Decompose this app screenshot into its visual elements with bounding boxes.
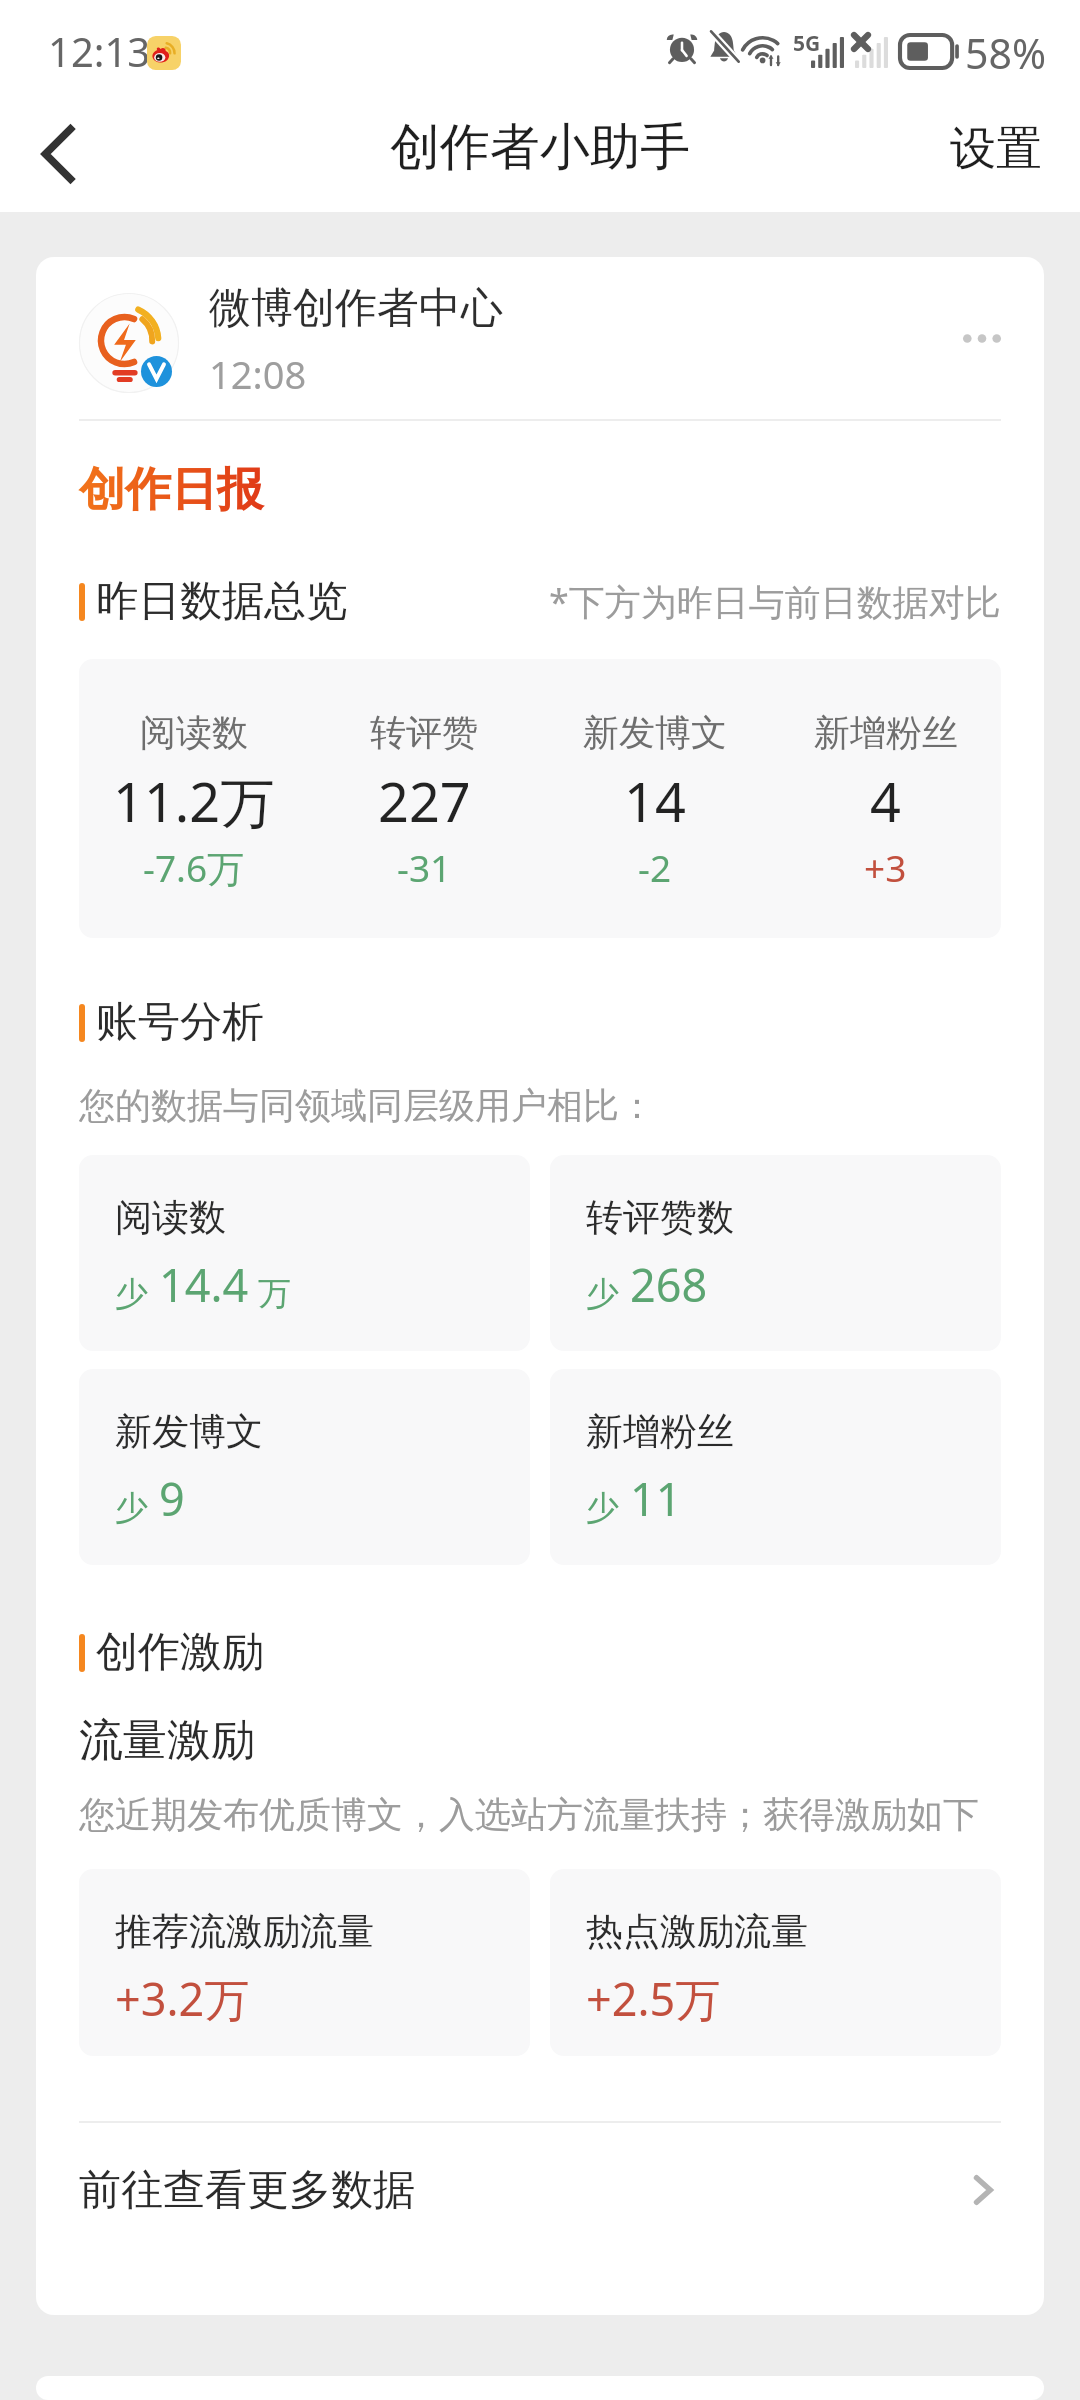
staticText: 14	[624, 764, 686, 838]
staticText: 4	[870, 764, 901, 838]
staticText: 创作日报	[79, 461, 263, 519]
staticText: 您近期发布优质博文，入选站方流量扶持；获得激励如下	[79, 1792, 979, 1837]
staticText: 阅读数	[140, 710, 248, 755]
staticText: 转评赞数	[586, 1194, 734, 1241]
staticText: 热点激励流量	[586, 1908, 808, 1955]
staticText: 阅读数	[115, 1194, 226, 1241]
button[interactable]: 阅读数	[79, 1155, 530, 1351]
staticText: +2.5万	[586, 1968, 721, 2029]
staticText: -31	[397, 842, 452, 892]
staticText: 少	[115, 1273, 148, 1315]
staticText: 推荐流激励流量	[115, 1908, 374, 1955]
button[interactable]: Back	[0, 106, 110, 212]
staticText: 万	[258, 1273, 291, 1315]
staticText: 12:08	[209, 348, 307, 400]
staticText: +3.2万	[115, 1968, 250, 2029]
button[interactable]: 推荐流激励流量	[79, 1869, 530, 2056]
staticText: 新发博文	[583, 710, 727, 755]
staticText: 创作者小助手	[390, 116, 690, 179]
staticText: 268	[630, 1254, 708, 1315]
staticText: -7.6万	[143, 842, 245, 893]
staticText: 创作激励	[96, 1626, 264, 1679]
staticText: 新增粉丝	[814, 710, 958, 755]
staticText: 5G	[793, 29, 821, 58]
staticText: 微博创作者中心	[209, 282, 503, 335]
staticText: 账号分析	[96, 996, 264, 1049]
staticText: 9	[159, 1468, 185, 1529]
staticText: 少	[115, 1487, 148, 1529]
staticText: 新发博文	[115, 1408, 263, 1455]
button[interactable]: 设置	[914, 106, 1080, 212]
staticText: 前往查看更多数据	[79, 2164, 415, 2217]
staticText: 转评赞	[370, 710, 478, 755]
staticText: 少	[586, 1487, 619, 1529]
button[interactable]: More options	[963, 310, 1001, 366]
staticText: 少	[586, 1273, 619, 1315]
button[interactable]: 新发博文	[79, 1369, 530, 1565]
staticText: 12:13	[48, 24, 151, 78]
staticText: 11	[630, 1468, 682, 1529]
staticText: 11.2万	[113, 764, 275, 838]
staticText: *下方为昨日与前日数据对比	[549, 577, 1001, 626]
button[interactable]: 新增粉丝	[550, 1369, 1001, 1565]
staticText: 新增粉丝	[586, 1408, 734, 1455]
staticText: 14.4	[159, 1254, 249, 1315]
staticText: 流量激励	[79, 1713, 255, 1768]
staticText: 您的数据与同领域同层级用户相比：	[79, 1083, 655, 1128]
staticText: -2	[638, 842, 672, 892]
staticText: 昨日数据总览	[96, 575, 348, 628]
staticText: 设置	[950, 120, 1042, 178]
button[interactable]: 转评赞数	[550, 1155, 1001, 1351]
staticText: 227	[378, 764, 471, 838]
staticText: 58%	[965, 25, 1046, 81]
staticText: +3	[864, 842, 907, 892]
button[interactable]: 前往查看更多数据	[36, 2123, 1044, 2315]
button[interactable]: 热点激励流量	[550, 1869, 1001, 2056]
